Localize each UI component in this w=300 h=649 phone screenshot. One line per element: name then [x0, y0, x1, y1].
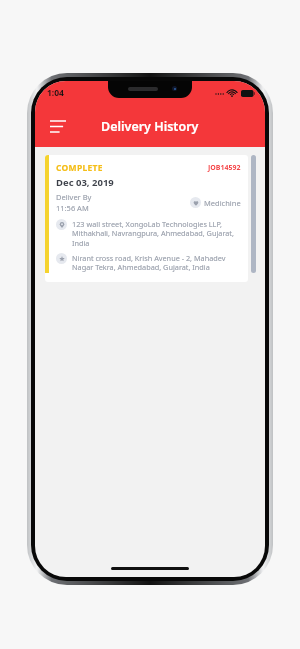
- button[interactable]: Open navigation menu: [43, 111, 73, 141]
- staticText: Deliver By: [56, 192, 92, 202]
- staticText: 123 wall street, XongoLab Technologies L…: [72, 219, 241, 249]
- button[interactable]: Medichine: [190, 197, 241, 208]
- staticText: Medichine: [204, 198, 241, 208]
- staticText: Nirant cross road, Krish Avenue - 2, Mah…: [72, 253, 241, 273]
- staticText: Dec 03, 2019: [56, 176, 114, 189]
- staticText: JOB14592: [208, 163, 241, 173]
- staticText: 1:04: [47, 87, 64, 99]
- staticText: COMPLETE: [56, 162, 208, 174]
- button[interactable]: COMPLETE: [45, 155, 248, 282]
- staticText: Delivery History: [101, 118, 199, 135]
- staticText: 11:56 AM: [56, 203, 89, 213]
